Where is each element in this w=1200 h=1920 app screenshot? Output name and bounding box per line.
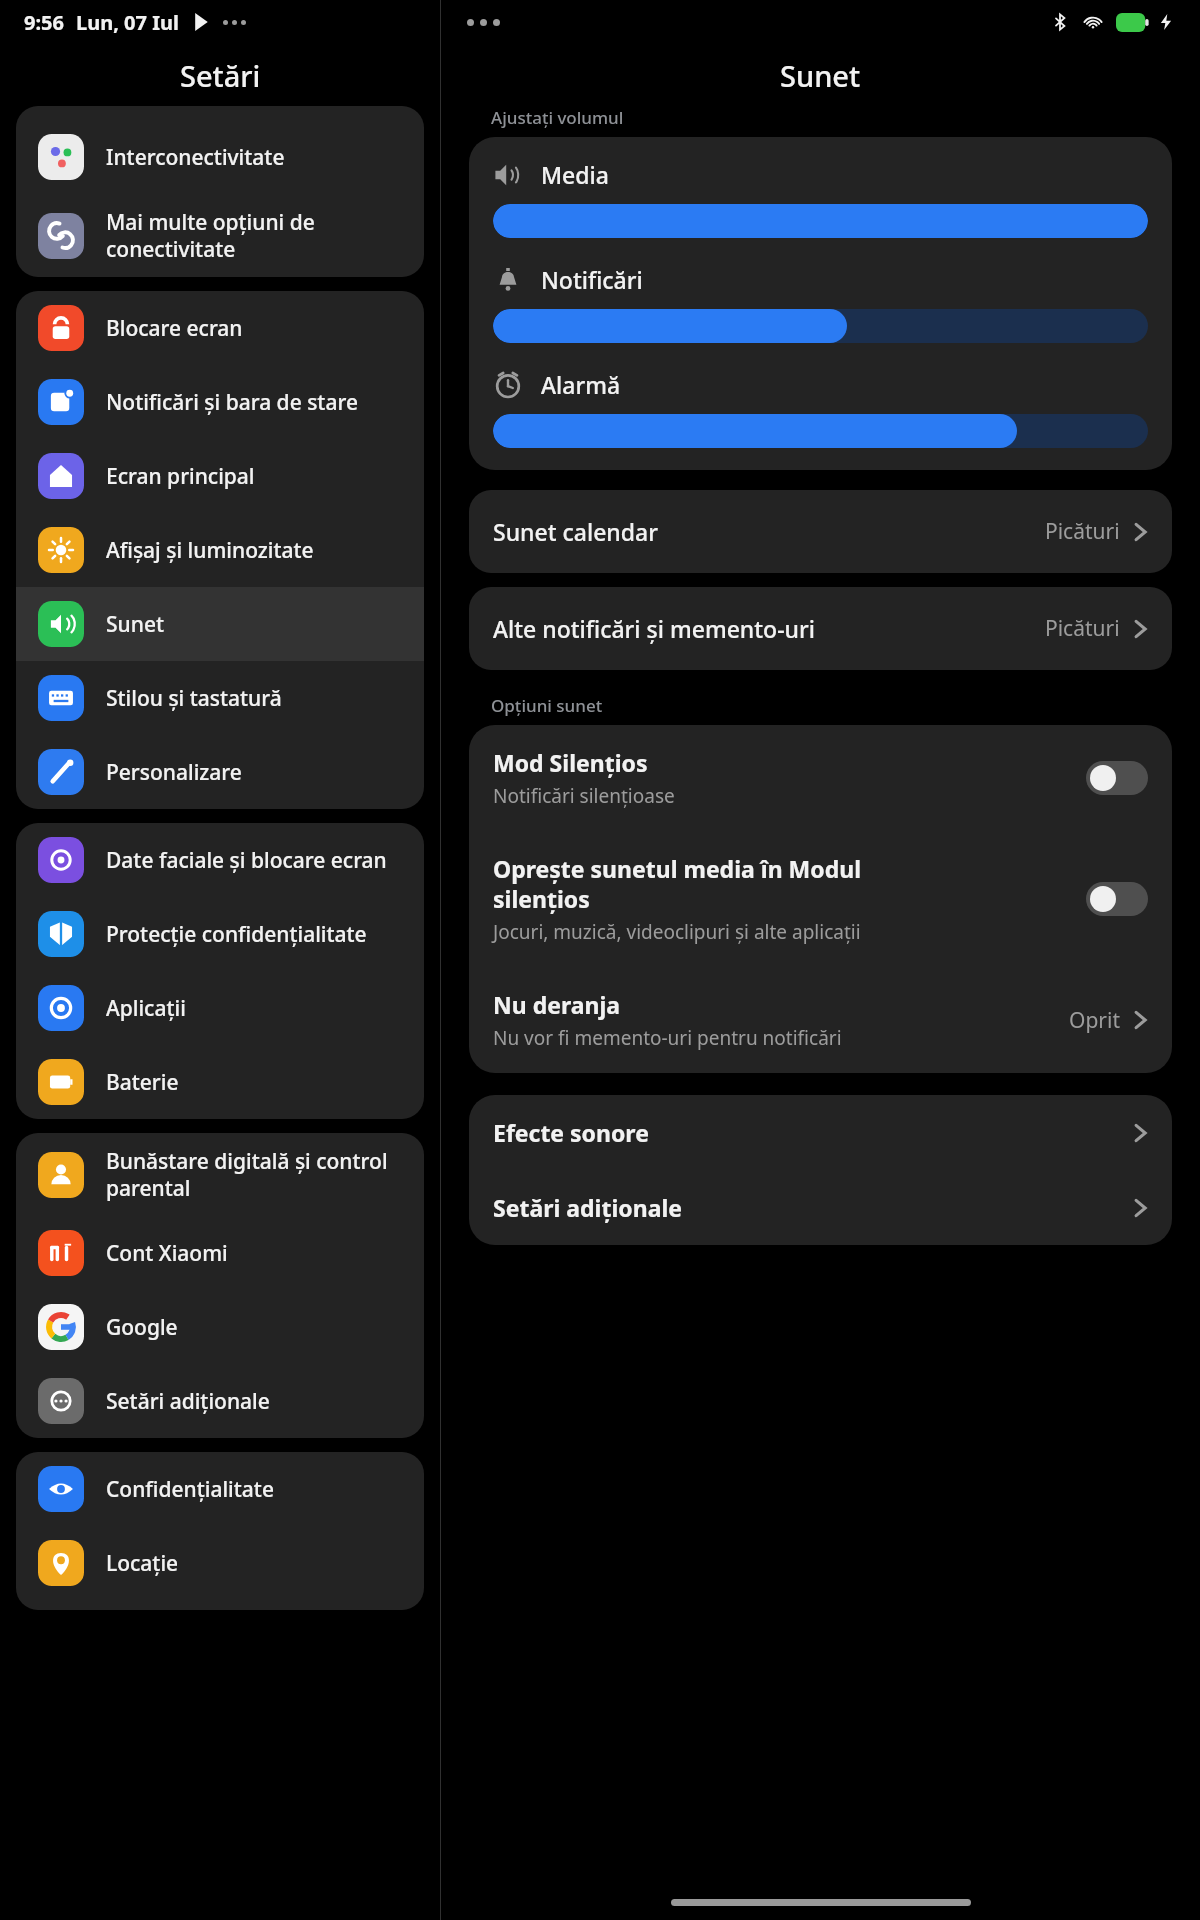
button[interactable]: Bunăstare digitală și control parental (16, 1133, 424, 1216)
staticText: Picături (1045, 517, 1120, 546)
staticText: Efecte sonore (493, 1117, 649, 1148)
button[interactable]: Afișaj și luminozitate (16, 513, 424, 587)
staticText: Ajustați volumul (491, 106, 624, 129)
staticText: Nu vor fi memento-uri pentru notificări (493, 1025, 842, 1051)
button[interactable]: Notificări și bara de stare (16, 365, 424, 439)
staticText: Locație (106, 1549, 179, 1578)
staticText: Stilou și tastatură (106, 684, 282, 713)
button[interactable]: Personalizare (16, 735, 424, 809)
button[interactable]: Mai multe opțiuni de conectivitate (16, 194, 424, 277)
button[interactable] (493, 414, 1148, 448)
staticText: Alte notificări și memento-uri (493, 613, 1045, 644)
staticText: Oprit (1069, 1006, 1120, 1035)
staticText: Afișaj și luminozitate (106, 536, 314, 565)
staticText: Notificări silențioase (493, 783, 675, 809)
staticText: Confidențialitate (106, 1475, 274, 1504)
button[interactable]: Protecție confidențialitate (16, 897, 424, 971)
button[interactable]: Date faciale și blocare ecran (16, 823, 424, 897)
button[interactable]: Toggle (1086, 882, 1148, 916)
button[interactable]: Mod Silențios (469, 725, 1172, 831)
staticText: Blocare ecran (106, 314, 243, 343)
button[interactable] (493, 204, 1148, 238)
staticText: Protecție confidențialitate (106, 920, 367, 949)
button[interactable]: Stilou și tastatură (16, 661, 424, 735)
staticText: Setări (180, 56, 261, 95)
button[interactable]: Cont Xiaomi (16, 1216, 424, 1290)
button[interactable]: Sunet calendar (469, 490, 1172, 573)
staticText: Sunet (780, 56, 861, 95)
button[interactable]: Nu deranja (469, 967, 1172, 1073)
staticText: Date faciale și blocare ecran (106, 846, 387, 875)
staticText: Lun, 07 Iul (76, 9, 179, 36)
staticText: Mod Silențios (493, 747, 648, 778)
button[interactable]: Oprește sunetul media în Modul silențios (469, 831, 1172, 967)
button[interactable]: Interconectivitate (16, 120, 424, 194)
staticText: Mai multe opțiuni de conectivitate (106, 208, 315, 263)
staticText: Jocuri, muzică, videoclipuri și alte apl… (493, 919, 861, 945)
button[interactable]: Locație (16, 1526, 424, 1600)
other: Notification volume (493, 265, 523, 295)
button[interactable]: Google (16, 1290, 424, 1364)
staticText: Picături (1045, 614, 1120, 643)
button[interactable]: Confidențialitate (16, 1452, 424, 1526)
button[interactable]: Blocare ecran (16, 291, 424, 365)
other: Media volume (493, 160, 523, 190)
button[interactable]: Aplicații (16, 971, 424, 1045)
staticText: Bunăstare digitală și control parental (106, 1147, 388, 1202)
button[interactable]: Efecte sonore (469, 1095, 1172, 1170)
button[interactable]: Setări adiționale (469, 1170, 1172, 1245)
staticText: Opțiuni sunet (491, 694, 603, 717)
other: Alarm volume (493, 370, 523, 400)
staticText: Setări adiționale (493, 1192, 683, 1223)
staticText: Notificări și bara de stare (106, 388, 358, 417)
button[interactable]: Ecran principal (16, 439, 424, 513)
button[interactable] (493, 309, 1148, 343)
staticText: Sunet (106, 610, 164, 639)
staticText: Interconectivitate (106, 143, 285, 172)
button[interactable]: Setări adiționale (16, 1364, 424, 1438)
staticText: Aplicații (106, 994, 186, 1023)
staticText: Notificări (541, 264, 643, 295)
staticText: Media (541, 159, 609, 190)
staticText: Cont Xiaomi (106, 1239, 228, 1268)
button[interactable]: Toggle (1086, 761, 1148, 795)
staticText: Nu deranja (493, 989, 621, 1020)
staticText: Setări adiționale (106, 1387, 270, 1416)
button[interactable]: Sunet (16, 587, 424, 661)
staticText: Baterie (106, 1068, 179, 1097)
staticText: Sunet calendar (493, 516, 1045, 547)
staticText: 9:56 (24, 9, 64, 36)
button[interactable]: Baterie (16, 1045, 424, 1119)
staticText: Oprește sunetul media în Modul silențios (493, 853, 861, 914)
staticText: Personalizare (106, 758, 242, 787)
staticText: Ecran principal (106, 462, 255, 491)
staticText: Alarmă (541, 369, 621, 400)
button[interactable]: Alte notificări și memento-uri (469, 587, 1172, 670)
staticText: Google (106, 1313, 178, 1342)
